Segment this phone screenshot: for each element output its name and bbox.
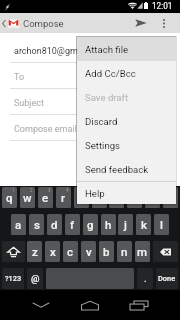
staticText: ?123 <box>5 274 22 283</box>
staticText: l <box>160 218 163 231</box>
staticText: Subject <box>14 98 44 109</box>
staticText: 2 <box>30 188 33 193</box>
button[interactable]: Add Cc/Bcc <box>77 61 176 85</box>
button[interactable]: d <box>47 214 62 235</box>
button[interactable]: Send <box>130 13 152 33</box>
button[interactable]: b <box>99 241 114 262</box>
staticText: 12:01 <box>152 1 173 11</box>
staticText: Compose email <box>14 124 77 135</box>
button[interactable]: g <box>83 214 98 235</box>
staticText: n <box>121 245 128 258</box>
button[interactable]: x <box>45 241 60 262</box>
staticText: . <box>144 273 147 284</box>
staticText: c <box>67 245 74 258</box>
button[interactable]: y <box>92 187 107 208</box>
staticText: 3 <box>48 188 51 193</box>
button[interactable]: l <box>154 214 169 235</box>
button[interactable]: To <box>0 71 180 84</box>
button[interactable]: u <box>109 187 124 208</box>
button[interactable]: Back <box>25 294 56 316</box>
staticText: a <box>15 218 22 231</box>
button[interactable]: Done <box>156 268 178 289</box>
button[interactable]: @ <box>27 268 43 289</box>
button[interactable]: v <box>81 241 96 262</box>
staticText: Compose <box>23 18 64 29</box>
button[interactable]: Home <box>75 294 105 316</box>
button[interactable]: Shift <box>2 241 25 262</box>
staticText: Discard <box>85 116 118 127</box>
staticText: 5 <box>84 188 87 193</box>
staticText: 4 <box>66 188 69 193</box>
button[interactable]: k <box>136 214 151 235</box>
button[interactable]: w <box>20 187 35 208</box>
button[interactable]: Attach file <box>77 37 176 61</box>
button[interactable]: Discard <box>77 109 176 133</box>
button[interactable]: t <box>74 187 89 208</box>
button[interactable]: n <box>117 241 132 262</box>
button[interactable]: Recent apps <box>124 294 154 316</box>
staticText: Attach file <box>85 44 129 55</box>
button[interactable]: Save draft <box>77 85 176 109</box>
staticText: z <box>32 245 38 258</box>
button[interactable]: m <box>135 241 150 262</box>
button[interactable]: a <box>11 214 26 235</box>
button[interactable]: h <box>101 214 116 235</box>
button[interactable]: o <box>145 187 160 208</box>
button[interactable]: Backspace <box>153 241 178 262</box>
button[interactable]: e <box>38 187 53 208</box>
button[interactable]: s <box>29 214 44 235</box>
staticText: @ <box>31 273 40 284</box>
button[interactable]: r <box>56 187 71 208</box>
staticText: j <box>124 218 127 231</box>
staticText: x <box>50 245 56 258</box>
staticText: g <box>87 218 94 231</box>
staticText: k <box>141 218 147 231</box>
button[interactable]: Subject <box>0 97 180 110</box>
staticText: h <box>105 218 112 231</box>
button[interactable]: q <box>2 187 17 208</box>
button[interactable]: More options <box>156 13 172 33</box>
staticText: Done <box>158 274 176 283</box>
button[interactable]: Send feedback <box>77 157 176 181</box>
staticText: s <box>34 218 40 231</box>
staticText: To <box>14 72 25 83</box>
button[interactable]: z <box>27 241 42 262</box>
staticText: Settings <box>85 140 121 151</box>
button[interactable]: c <box>63 241 78 262</box>
staticText: w <box>23 191 32 204</box>
staticText: q <box>6 191 13 204</box>
button[interactable]: j <box>118 214 133 235</box>
button[interactable]: Compose email <box>0 123 180 136</box>
button[interactable]: archon810@gm <box>0 45 180 58</box>
staticText: d <box>51 218 58 231</box>
staticText: m <box>137 245 148 258</box>
button[interactable]: f <box>65 214 80 235</box>
button[interactable]: Help <box>77 182 176 204</box>
staticText: y <box>97 191 103 204</box>
staticText: f <box>70 218 75 231</box>
button[interactable]: . <box>137 268 153 289</box>
staticText: Send feedback <box>85 164 149 175</box>
staticText: Save draft <box>85 92 129 103</box>
button[interactable]: ?123 <box>2 268 24 289</box>
staticText: b <box>103 245 110 258</box>
staticText: Help <box>85 188 105 199</box>
staticText: 1 <box>12 188 15 193</box>
staticText: v <box>86 245 92 258</box>
button[interactable]: i <box>127 187 142 208</box>
button[interactable]: Settings <box>77 133 176 157</box>
staticText: 6 <box>102 188 105 193</box>
button[interactable]: Navigate up <box>0 13 8 33</box>
button[interactable]: p <box>163 187 178 208</box>
staticText: archon810@gm <box>14 46 78 57</box>
